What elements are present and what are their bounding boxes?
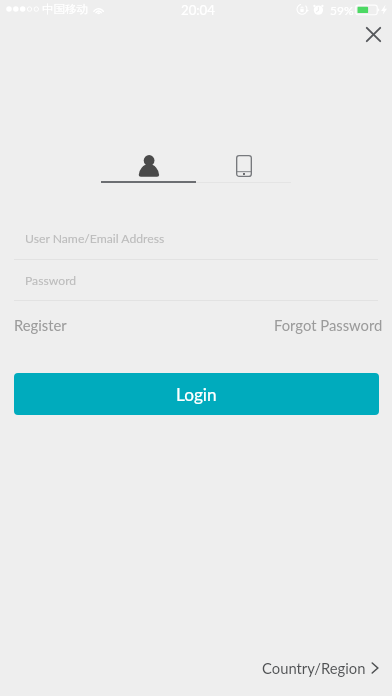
staticText: Country/Region (262, 659, 366, 677)
button[interactable]: Register (14, 316, 67, 334)
staticText: Password (25, 273, 77, 288)
staticText: Login (176, 384, 217, 405)
staticText: 59% (330, 3, 354, 17)
button[interactable]: Forgot Password (274, 316, 383, 334)
button[interactable]: Login (14, 373, 379, 415)
button[interactable]: Account login (101, 146, 196, 186)
staticText: 中国移动 (42, 2, 88, 16)
button[interactable]: Close (353, 18, 392, 50)
staticText: Forgot Password (274, 316, 383, 334)
button[interactable]: Country/Region (262, 655, 379, 681)
staticText: User Name/Email Address (25, 231, 165, 246)
button[interactable]: User Name/Email Address (14, 222, 378, 255)
button[interactable]: Password (14, 264, 378, 296)
staticText: Register (14, 316, 67, 334)
button[interactable]: Phone login (196, 146, 291, 186)
staticText: 20:04 (181, 2, 215, 18)
